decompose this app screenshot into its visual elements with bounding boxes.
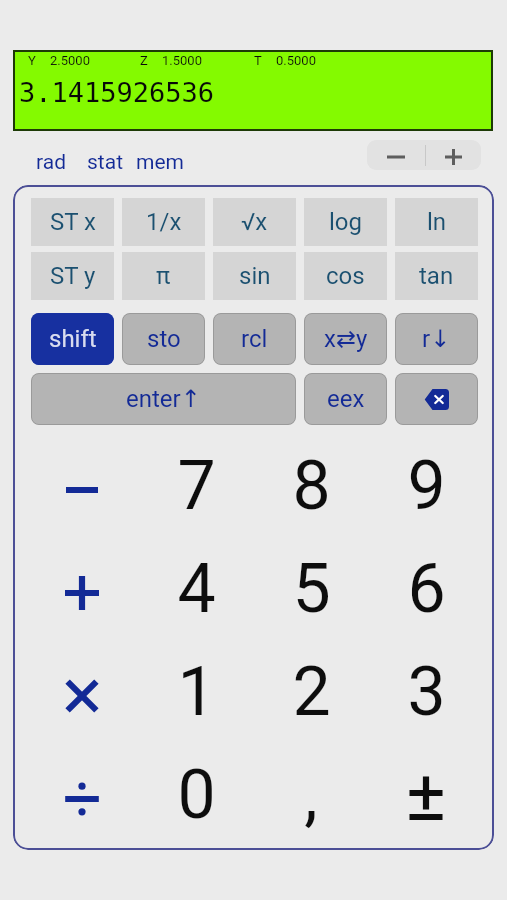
staticText: ,	[304, 755, 318, 835]
staticText: 0	[177, 755, 216, 835]
staticText: 6	[407, 549, 446, 629]
staticText: mem	[136, 150, 184, 175]
staticText: 1	[177, 652, 216, 732]
staticText: 1/x	[146, 208, 182, 236]
button[interactable]	[370, 749, 482, 849]
button[interactable]: Increase	[426, 140, 481, 170]
button[interactable]: Backspace	[395, 373, 478, 425]
button[interactable]: ST y	[31, 252, 114, 300]
staticText: 5	[292, 549, 331, 629]
button[interactable]: 1	[140, 642, 252, 742]
staticText: 3.1415926536	[19, 77, 215, 108]
button[interactable]: 5	[255, 539, 367, 639]
staticText: x⇄y	[324, 325, 368, 353]
button[interactable]: rcl	[213, 313, 296, 365]
button[interactable]: 4	[140, 539, 252, 639]
button[interactable]: ST x	[31, 198, 114, 246]
button[interactable]: Plus	[26, 543, 138, 643]
staticText: √x	[241, 208, 268, 236]
staticText: shift	[49, 325, 97, 353]
button[interactable]: 6	[370, 539, 482, 639]
staticText: log	[329, 208, 362, 236]
staticText: sin	[239, 262, 271, 290]
staticText: 9	[407, 446, 446, 526]
button[interactable]: √x	[213, 198, 296, 246]
staticText: Z	[140, 53, 148, 68]
button[interactable]: sin	[213, 252, 296, 300]
staticText: tan	[419, 262, 454, 290]
button[interactable]: 3	[370, 642, 482, 742]
button[interactable]: log	[304, 198, 387, 246]
staticText: 8	[292, 446, 331, 526]
staticText: 2	[292, 652, 331, 732]
staticText: sto	[147, 325, 181, 353]
staticText: 2.5000	[50, 53, 90, 68]
staticText: ST x	[50, 208, 96, 236]
button[interactable]: cos	[304, 252, 387, 300]
button[interactable]: shift	[31, 313, 114, 365]
staticText: enter↑	[126, 385, 201, 413]
button[interactable]: 1/x	[122, 198, 205, 246]
staticText: 3	[407, 652, 446, 732]
staticText: r↓	[422, 325, 451, 353]
button[interactable]: enter↑	[31, 373, 296, 425]
staticText: π	[156, 262, 171, 290]
button[interactable]: Decrease	[367, 140, 425, 170]
staticText: ST y	[50, 262, 96, 290]
staticText: 7	[177, 446, 216, 526]
button[interactable]: 9	[370, 436, 482, 536]
button[interactable]: 7	[140, 436, 252, 536]
staticText: T	[254, 53, 262, 68]
staticText: 0.5000	[276, 53, 316, 68]
button[interactable]: ln	[395, 198, 478, 246]
staticText: ln	[427, 208, 447, 236]
button[interactable]: 2	[255, 642, 367, 742]
button[interactable]: Multiply	[26, 646, 138, 746]
button[interactable]: tan	[395, 252, 478, 300]
button[interactable]: 0	[140, 745, 252, 845]
staticText: stat	[87, 150, 124, 175]
button[interactable]: stat	[81, 145, 130, 180]
staticText: 1.5000	[162, 53, 202, 68]
button[interactable]: r↓	[395, 313, 478, 365]
button[interactable]: mem	[130, 145, 190, 180]
button[interactable]: ,	[255, 745, 367, 845]
button[interactable]: Divide	[26, 749, 138, 849]
staticText: eex	[327, 385, 365, 413]
staticText: rad	[36, 150, 66, 175]
button[interactable]: eex	[304, 373, 387, 425]
button[interactable]: 8	[255, 436, 367, 536]
staticText: rcl	[241, 325, 268, 353]
button[interactable]: π	[122, 252, 205, 300]
staticText: Y	[28, 53, 36, 68]
button[interactable]: sto	[122, 313, 205, 365]
staticText: cos	[326, 262, 365, 290]
staticText: 4	[177, 549, 216, 629]
button[interactable]: Minus	[26, 440, 138, 540]
button[interactable]: x⇄y	[304, 313, 387, 365]
button[interactable]: rad	[30, 145, 72, 180]
